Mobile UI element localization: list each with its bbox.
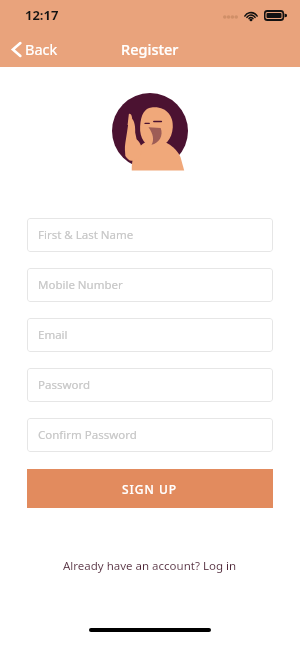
button[interactable]: First & Last Name	[27, 218, 273, 252]
button[interactable]: Mobile Number	[27, 268, 273, 302]
other: App logo	[112, 93, 188, 169]
button[interactable]: SIGN UP	[27, 469, 273, 508]
staticText: Already have an account? Log in	[63, 558, 237, 574]
staticText: Back	[25, 39, 58, 59]
staticText: Mobile Number	[38, 277, 123, 293]
button[interactable]: Back	[6, 34, 64, 64]
staticText: Register	[121, 39, 179, 59]
staticText: 12:17	[25, 6, 59, 24]
staticText: First & Last Name	[38, 227, 134, 243]
button[interactable]: Already have an account? Log in	[49, 552, 251, 580]
staticText: Password	[38, 377, 91, 393]
staticText: SIGN UP	[122, 481, 178, 497]
button[interactable]: Password	[27, 368, 273, 402]
button[interactable]: Email	[27, 318, 273, 352]
button[interactable]: Confirm Password	[27, 418, 273, 452]
staticText: Email	[38, 327, 68, 343]
staticText: Confirm Password	[38, 427, 137, 443]
